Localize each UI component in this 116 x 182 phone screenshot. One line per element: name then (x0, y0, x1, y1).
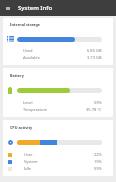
staticText: 3.73 GB (87, 55, 102, 60)
staticText: 6.85 GB (87, 48, 102, 53)
staticText: 22% (94, 152, 102, 157)
staticText: User (24, 152, 33, 157)
staticText: System Info (18, 4, 53, 12)
button[interactable]: Menu (0, 0, 16, 16)
staticText: 59% (94, 100, 102, 105)
staticText: 59% (94, 166, 102, 171)
staticText: Level (23, 100, 33, 105)
staticText: 19% (94, 159, 102, 164)
staticText: CPU activity (10, 125, 33, 130)
staticText: Idle (24, 166, 32, 171)
staticText: Battery (10, 73, 24, 78)
staticText: Available (23, 55, 40, 60)
staticText: Used (23, 48, 33, 53)
staticText: Temperature (23, 107, 48, 112)
staticText: Internal storage (10, 22, 41, 27)
staticText: System (24, 159, 38, 164)
staticText: 35.78 °C (86, 107, 102, 112)
